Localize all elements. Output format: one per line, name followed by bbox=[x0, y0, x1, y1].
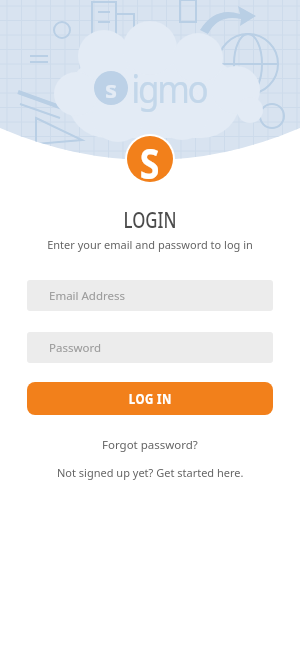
button[interactable]: Not signed up yet? Get started here. bbox=[57, 465, 244, 480]
staticText: LOGIN bbox=[30, 206, 270, 235]
button[interactable]: Password bbox=[27, 332, 273, 363]
button[interactable]: LOG IN bbox=[27, 382, 273, 415]
button[interactable]: Email Address bbox=[27, 280, 273, 311]
staticText: Forgot password? bbox=[102, 437, 198, 453]
button[interactable]: Forgot password? bbox=[102, 437, 198, 453]
staticText: s bbox=[105, 72, 118, 105]
staticText: Password bbox=[49, 340, 102, 356]
staticText: S bbox=[140, 136, 160, 180]
staticText: Enter your email and password to log in bbox=[0, 237, 300, 252]
staticText: igmo bbox=[131, 62, 207, 114]
staticText: Email Address bbox=[49, 288, 126, 304]
staticText: Not signed up yet? Get started here. bbox=[57, 465, 244, 480]
staticText: LOG IN bbox=[129, 390, 172, 408]
